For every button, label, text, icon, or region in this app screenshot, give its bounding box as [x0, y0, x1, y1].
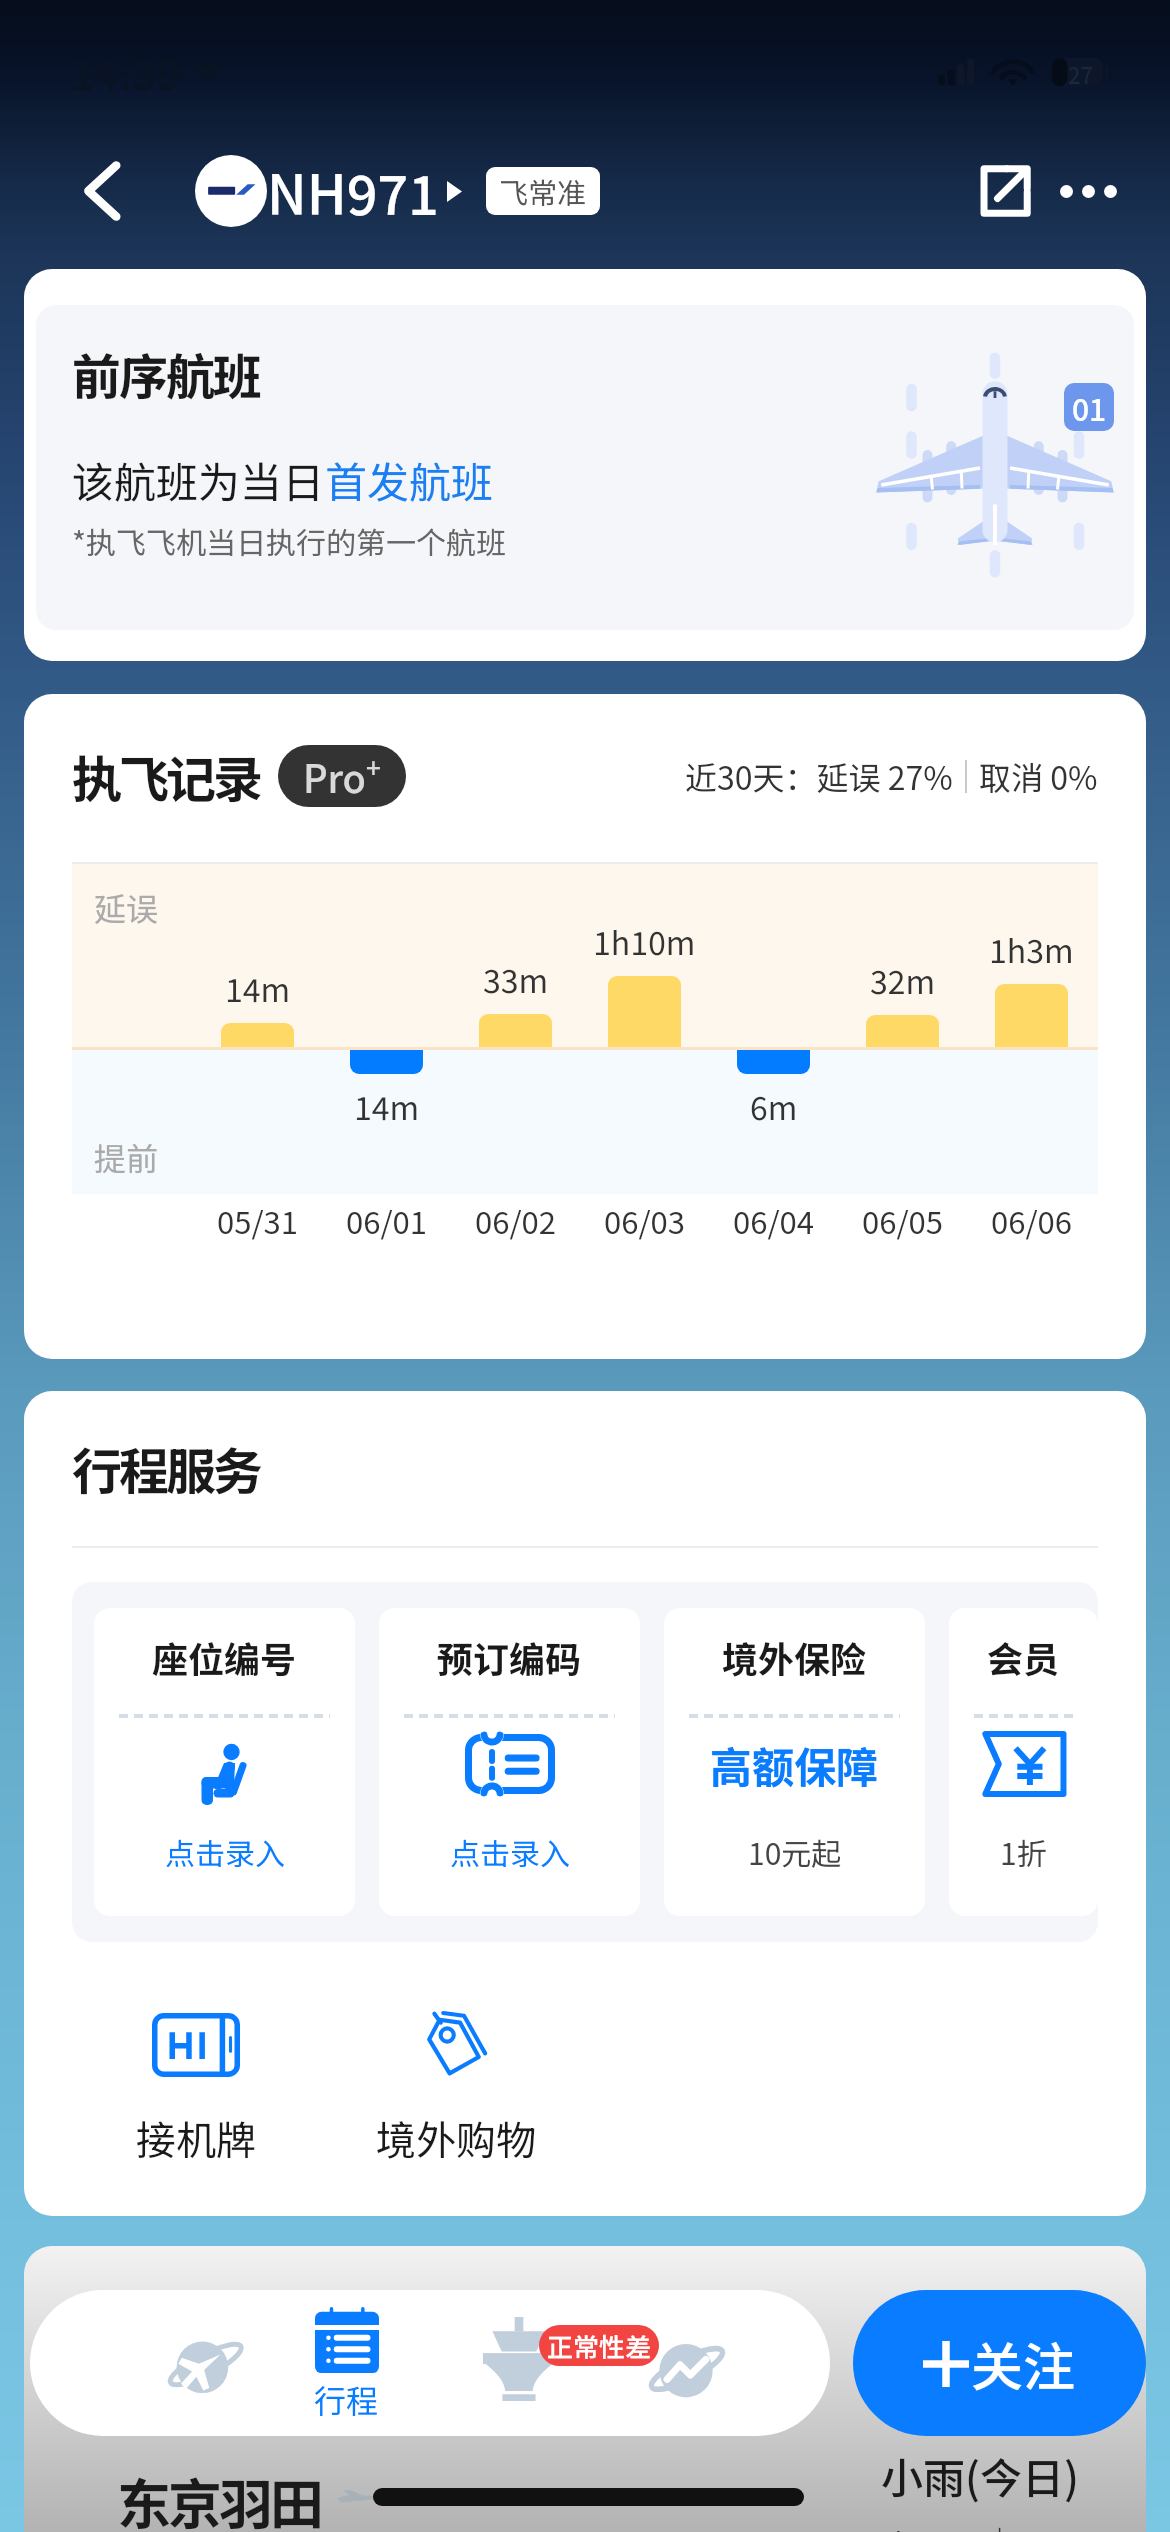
staticText: 近30天：延误 27% [685, 753, 953, 799]
button[interactable]: 会员 [949, 1608, 1098, 1916]
staticText: 06/03 [604, 1198, 685, 1243]
button[interactable]: Share [968, 155, 1040, 227]
staticText: 小雨(今日) [881, 2445, 1079, 2506]
staticText: 延误 [94, 884, 159, 930]
staticText: 预订编码 [437, 1631, 582, 1683]
staticText: 正常性差 [547, 2327, 652, 2365]
button[interactable]: Flights [145, 2290, 265, 2436]
staticText: 1h3m [989, 926, 1074, 972]
staticText: 行程 [314, 2376, 379, 2422]
staticText: 飞常准 [499, 170, 587, 212]
staticText: 点击录入 [165, 1830, 285, 1873]
staticText: 01 [1072, 386, 1107, 429]
staticText: Pro [303, 749, 366, 804]
button[interactable]: 预订编码 [379, 1608, 640, 1916]
staticText: 14:39 [70, 41, 181, 102]
staticText: 高额保障 [710, 1734, 879, 1795]
button[interactable]: 前序航班 [24, 269, 1146, 661]
staticText: 执飞记录 [72, 740, 260, 812]
staticText: NH971 [267, 152, 439, 230]
staticText: 关注 [971, 2326, 1076, 2401]
staticText: 14m [225, 965, 291, 1011]
staticText: 境外购物 [376, 2109, 536, 2167]
button[interactable]: More options [1052, 155, 1124, 227]
staticText: 前序航班 [72, 338, 261, 409]
button[interactable]: 境外保险 [664, 1608, 925, 1916]
button[interactable]: 境外购物 [372, 2003, 540, 2167]
button[interactable]: NH971 [195, 152, 462, 230]
button[interactable]: On-time performance [453, 2290, 713, 2436]
staticText: 东京羽田 [117, 2461, 321, 2532]
staticText: + [366, 748, 381, 786]
staticText: 取消 0% [979, 753, 1098, 799]
staticText: 提前 [94, 1134, 159, 1180]
button[interactable]: 接机牌 [112, 2003, 280, 2167]
staticText: 05/31 [217, 1198, 298, 1243]
staticText: 境外保险 [722, 1631, 867, 1683]
staticText: 该航班为当日 [72, 449, 325, 510]
button[interactable]: Back [70, 156, 132, 226]
button[interactable]: Pro [278, 745, 406, 807]
staticText: 06/02 [475, 1198, 556, 1243]
staticText: *执飞飞机当日执行的第一个航班 [72, 519, 507, 562]
button[interactable]: 关注 [853, 2290, 1146, 2436]
staticText: 17°C/24°C｜2000 [805, 2517, 1104, 2532]
button[interactable]: 飞常准 [486, 167, 600, 215]
staticText: 27 [1068, 58, 1094, 86]
staticText: 06/05 [862, 1198, 943, 1243]
staticText: 会员 [987, 1631, 1060, 1683]
staticText: 06/04 [733, 1198, 814, 1243]
staticText: 06/01 [346, 1198, 427, 1243]
staticText: 6m [750, 1083, 798, 1129]
button[interactable]: 行程 [286, 2290, 406, 2436]
staticText: 座位编号 [152, 1631, 297, 1683]
staticText: 1h10m [593, 918, 696, 964]
staticText: 首发航班 [325, 449, 494, 510]
staticText: 14m [354, 1083, 420, 1129]
staticText: 06/06 [991, 1198, 1072, 1243]
staticText: 33m [483, 956, 549, 1002]
staticText: 1折 [1000, 1830, 1047, 1873]
staticText: 32m [870, 957, 936, 1003]
staticText: 行程服务 [72, 1432, 260, 1504]
staticText: 点击录入 [450, 1830, 570, 1873]
button[interactable]: 座位编号 [94, 1608, 355, 1916]
staticText: 10元起 [748, 1830, 842, 1873]
staticText: 接机牌 [136, 2109, 256, 2167]
